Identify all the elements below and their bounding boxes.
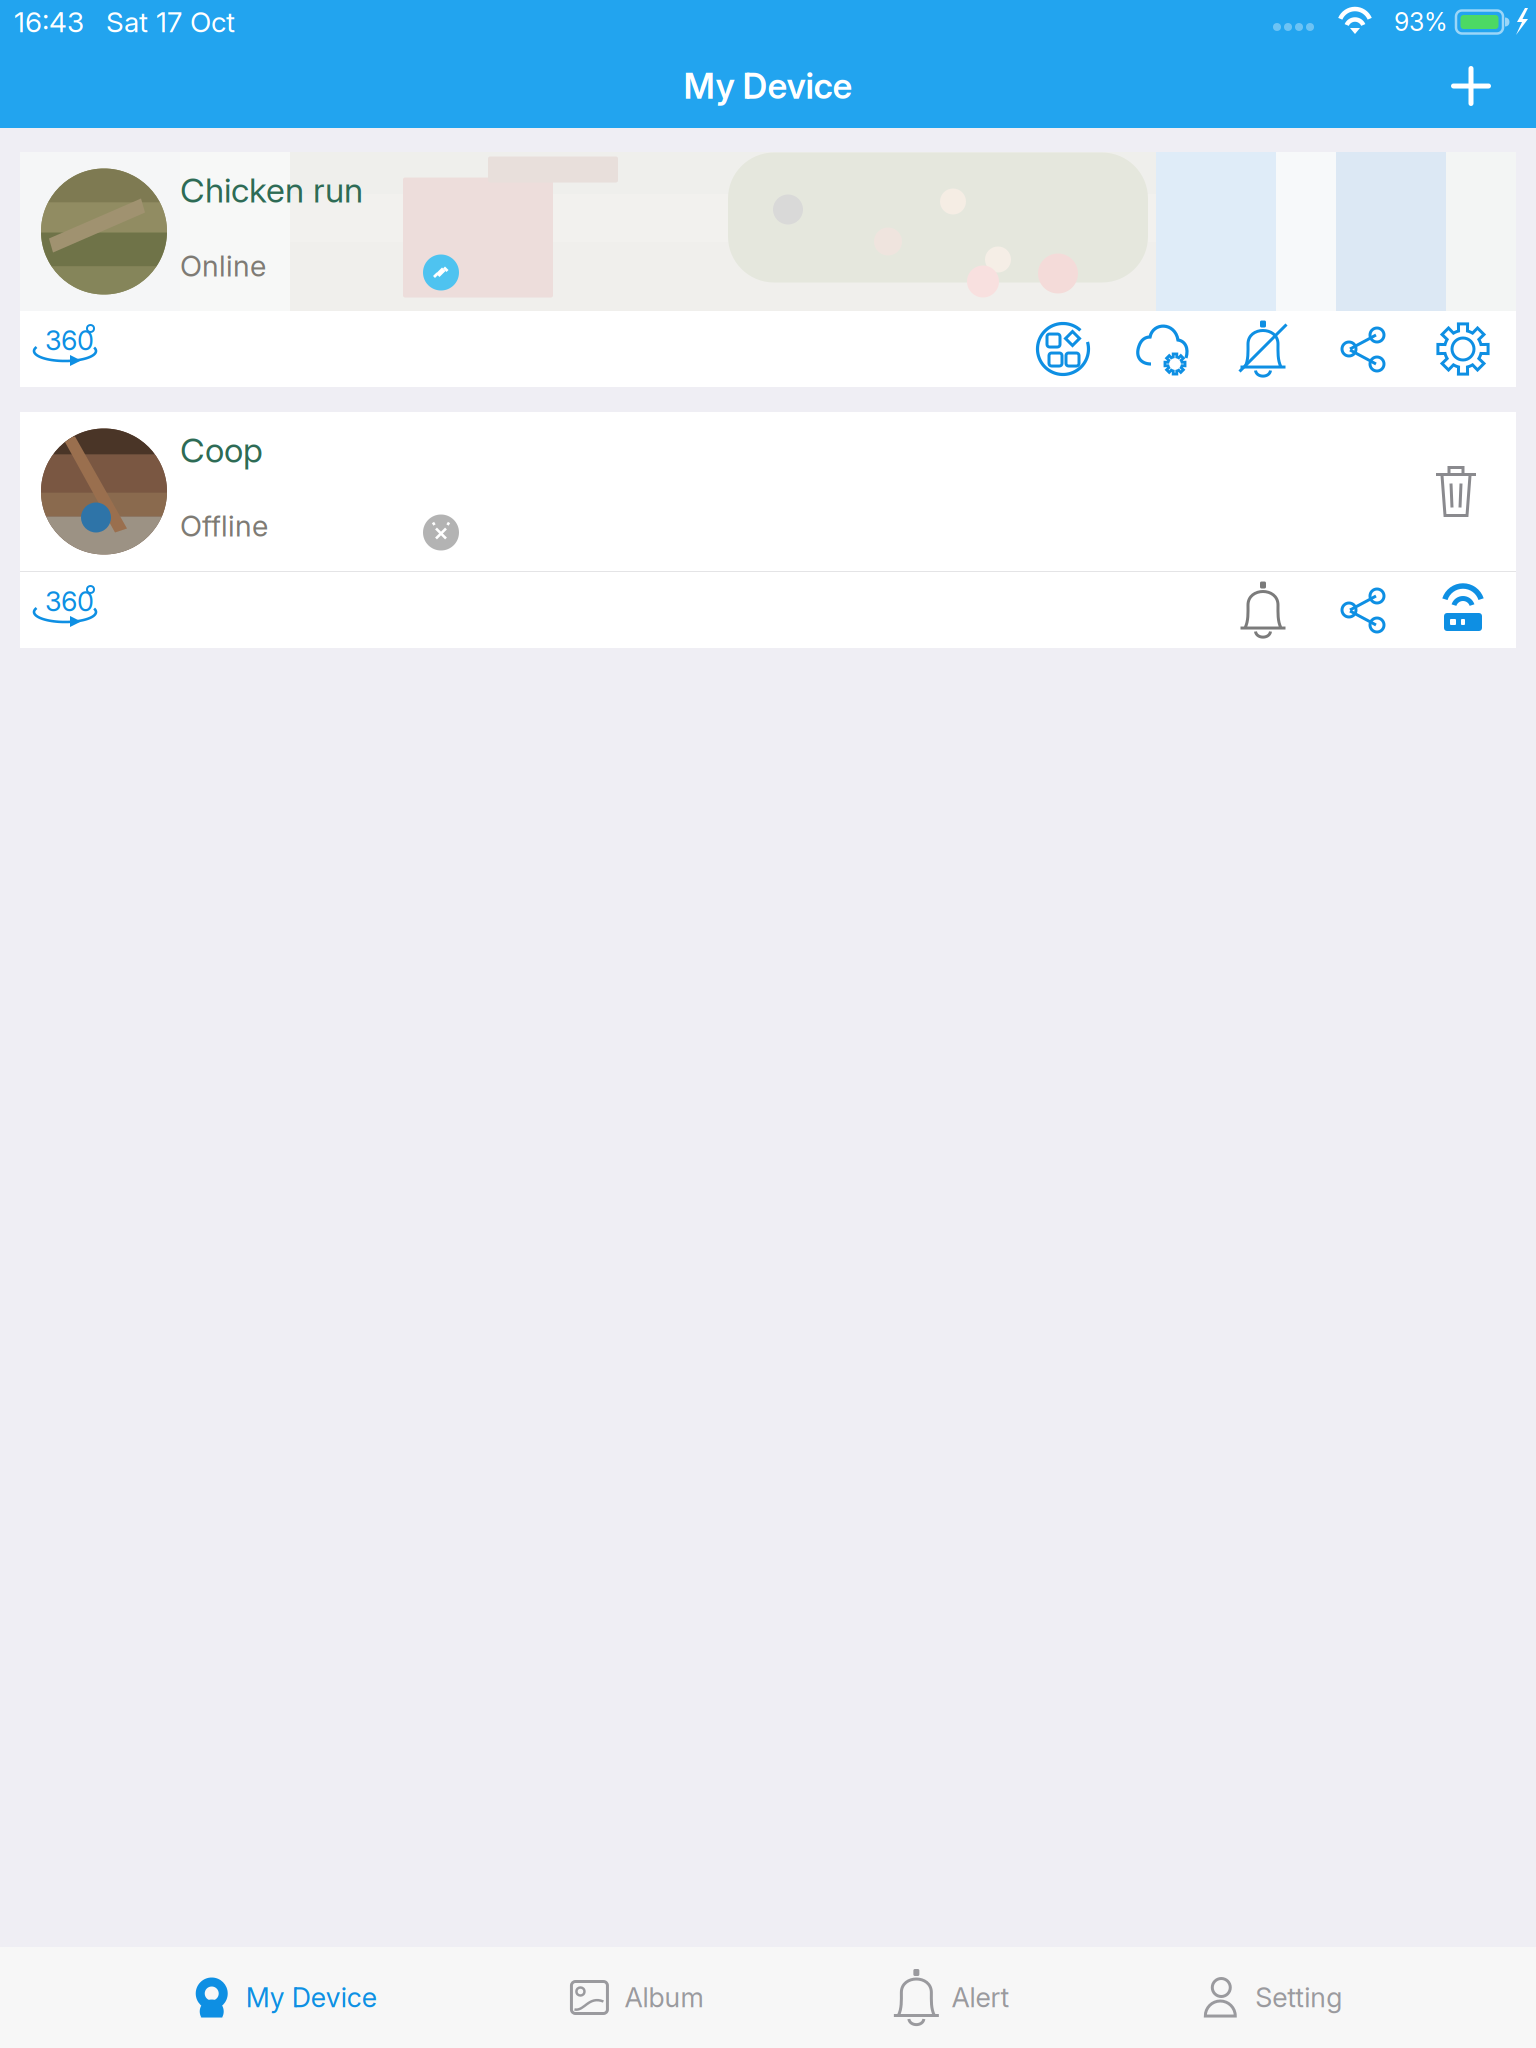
staticText: My Device <box>246 1981 377 2014</box>
button[interactable]: 360 panorama <box>32 591 98 629</box>
button[interactable]: Delete <box>1428 461 1484 521</box>
button[interactable]: Apps <box>1033 319 1093 379</box>
staticText: 360 <box>45 324 94 357</box>
staticText: Alert <box>952 1981 1010 2014</box>
button[interactable]: Settings <box>1433 319 1493 379</box>
staticText: Coop <box>180 429 263 471</box>
staticText: 16:43 <box>14 5 84 39</box>
button[interactable]: Cloud settings <box>1133 319 1193 379</box>
button[interactable]: Coop <box>20 412 1516 571</box>
staticText: Offline <box>180 508 268 543</box>
button[interactable]: Share <box>1333 580 1393 640</box>
staticText: 360 <box>45 585 94 618</box>
staticText: Chicken run <box>180 169 363 211</box>
button[interactable]: My Device <box>194 1977 377 2017</box>
staticText: 93% <box>1394 7 1448 37</box>
button[interactable]: Alert <box>897 1978 1010 2017</box>
button[interactable]: Share <box>1333 319 1393 379</box>
staticText: Setting <box>1255 1981 1342 2014</box>
staticText: Album <box>624 1981 703 2014</box>
button[interactable]: Album <box>570 1978 703 2016</box>
staticText: Online <box>180 248 266 283</box>
button[interactable]: Network <box>1433 580 1493 640</box>
button[interactable]: Chicken run <box>20 152 1516 311</box>
staticText: My Device <box>683 65 852 107</box>
staticText: Sat 17 Oct <box>106 5 235 39</box>
button[interactable]: 360 panorama <box>32 330 98 368</box>
button[interactable]: Notifications off <box>1233 319 1293 379</box>
button[interactable]: Setting <box>1203 1978 1342 2016</box>
button[interactable]: Notifications <box>1233 580 1293 640</box>
button[interactable]: Add device <box>1429 44 1513 128</box>
